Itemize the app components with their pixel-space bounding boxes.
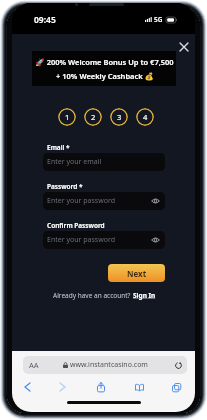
staticText: Enter your password	[47, 235, 115, 245]
staticText: Enter your password	[47, 196, 115, 206]
button[interactable]: Show password	[151, 198, 160, 204]
staticText: Already have an account?	[53, 291, 133, 300]
staticText: Enter your email	[47, 157, 102, 167]
staticText: 5G	[154, 15, 163, 24]
staticText: www.instantcasino.com	[70, 360, 148, 370]
button[interactable]: Enter your password	[43, 231, 165, 249]
staticText: Email *	[47, 143, 70, 152]
button[interactable]: Enter your password	[43, 192, 165, 210]
button[interactable]: 3	[110, 108, 128, 126]
button[interactable]: Next	[108, 264, 165, 282]
staticText: 4	[143, 112, 148, 122]
button[interactable]: Show password	[151, 237, 160, 243]
staticText: 09:45	[34, 14, 56, 26]
staticText: + 10% Weekly Cashback 💰	[56, 71, 154, 81]
staticText: Next	[127, 268, 147, 279]
button[interactable]: 1	[58, 108, 76, 126]
button[interactable]: Forward	[53, 378, 71, 396]
staticText: AA	[29, 360, 39, 370]
button[interactable]: Sign In	[133, 291, 156, 300]
staticText: Password *	[47, 182, 83, 191]
staticText: 3	[117, 112, 122, 122]
button[interactable]: Enter your email	[43, 153, 165, 171]
button[interactable]: 🚀 200% Welcome Bonus Up to €7,500	[32, 51, 176, 86]
button[interactable]: AA	[23, 356, 187, 374]
button[interactable]: Bookmarks	[130, 378, 148, 396]
button[interactable]: Tabs	[167, 378, 185, 396]
staticText: 2	[91, 112, 96, 122]
staticText: 1	[65, 112, 70, 122]
staticText: 🚀 200% Welcome Bonus Up to €7,500	[35, 57, 174, 67]
button[interactable]: Back	[18, 378, 36, 396]
button[interactable]: Reload	[175, 362, 182, 369]
staticText: Confirm Password	[47, 221, 105, 230]
button[interactable]: 4	[136, 108, 154, 126]
button[interactable]: Share	[92, 378, 110, 396]
button[interactable]: Close banner	[176, 39, 192, 55]
button[interactable]: 2	[84, 108, 102, 126]
